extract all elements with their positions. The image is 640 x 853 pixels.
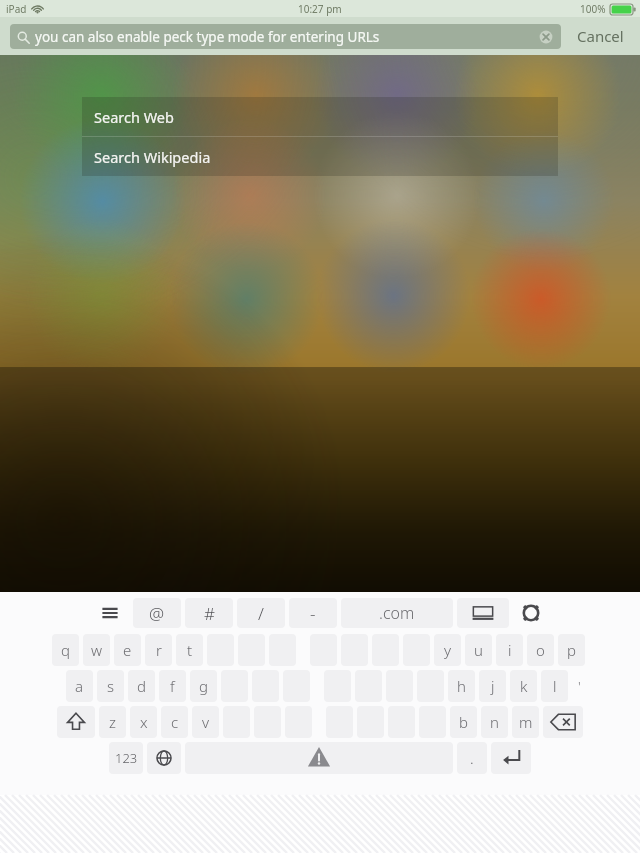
button[interactable]: Space — [185, 742, 453, 774]
button[interactable]: - — [289, 598, 337, 628]
button[interactable]: # — [185, 598, 233, 628]
button[interactable]: k — [510, 670, 537, 702]
button[interactable]: f — [159, 670, 186, 702]
button[interactable]: n — [481, 706, 508, 738]
staticText: .com — [379, 602, 415, 624]
staticText: r — [156, 640, 162, 660]
button[interactable]: z — [99, 706, 126, 738]
staticText: i — [508, 640, 512, 660]
button[interactable]: m — [512, 706, 539, 738]
button[interactable]: Backspace — [543, 706, 583, 738]
button[interactable]: p — [558, 634, 585, 666]
button[interactable]: d — [128, 670, 155, 702]
staticText: b — [459, 712, 468, 732]
staticText: x — [140, 712, 148, 732]
staticText: . — [470, 748, 474, 768]
button[interactable]: x — [130, 706, 157, 738]
staticText: y — [444, 640, 452, 660]
staticText: s — [107, 676, 115, 696]
button[interactable]: Keyboard menu — [91, 598, 129, 628]
button[interactable]: a — [66, 670, 93, 702]
staticText: f — [170, 676, 175, 696]
staticText: o — [536, 640, 545, 660]
staticText: c — [171, 712, 179, 732]
staticText: Cancel — [577, 26, 624, 46]
button[interactable]: g — [190, 670, 217, 702]
staticText: iPad — [6, 2, 27, 16]
button[interactable]: u — [465, 634, 492, 666]
button[interactable]: r — [145, 634, 172, 666]
button[interactable]: @ — [133, 598, 181, 628]
staticText: @ — [149, 602, 165, 625]
staticText: d — [137, 676, 146, 696]
staticText: p — [567, 640, 576, 660]
button[interactable]: c — [161, 706, 188, 738]
staticText: - — [310, 602, 316, 625]
button[interactable]: w — [83, 634, 110, 666]
staticText: Search Web — [94, 107, 174, 127]
staticText: 100% — [580, 2, 606, 16]
button[interactable]: you can also enable peck type mode for e… — [10, 24, 561, 49]
button[interactable]: Return — [491, 742, 531, 774]
staticText: m — [519, 712, 533, 732]
button[interactable]: e — [114, 634, 141, 666]
staticText: 10:27 pm — [298, 2, 342, 16]
button[interactable]: .com — [341, 598, 453, 628]
button[interactable]: q — [52, 634, 79, 666]
button[interactable]: v — [192, 706, 219, 738]
button[interactable]: Clear text — [538, 29, 554, 45]
button[interactable]: Search Web — [82, 97, 558, 136]
button[interactable]: Switch keyboard — [147, 742, 181, 774]
button[interactable]: l — [541, 670, 568, 702]
staticText: u — [474, 640, 483, 660]
staticText: / — [258, 602, 264, 625]
button[interactable]: o — [527, 634, 554, 666]
button[interactable]: j — [479, 670, 506, 702]
staticText: q — [61, 640, 70, 660]
staticText: g — [199, 676, 208, 696]
staticText: 123 — [115, 749, 138, 767]
button[interactable]: Search Wikipedia — [82, 137, 558, 176]
staticText: n — [490, 712, 499, 732]
button[interactable]: Settings — [513, 598, 549, 628]
button[interactable]: 123 — [109, 742, 143, 774]
button[interactable]: y — [434, 634, 461, 666]
button[interactable]: / — [237, 598, 285, 628]
button[interactable]: b — [450, 706, 477, 738]
button[interactable]: t — [176, 634, 203, 666]
button[interactable]: i — [496, 634, 523, 666]
button[interactable]: Cancel — [571, 22, 630, 50]
staticText: j — [491, 676, 495, 696]
button[interactable]: s — [97, 670, 124, 702]
button[interactable]: h — [448, 670, 475, 702]
button[interactable]: Shift — [57, 706, 95, 738]
staticText: h — [457, 676, 466, 696]
button[interactable]: ' — [572, 670, 586, 702]
button[interactable]: Dictionary — [457, 598, 509, 628]
staticText: Search Wikipedia — [94, 147, 211, 167]
staticText: l — [553, 676, 557, 696]
button[interactable]: . — [457, 742, 487, 774]
staticText: t — [187, 640, 193, 660]
